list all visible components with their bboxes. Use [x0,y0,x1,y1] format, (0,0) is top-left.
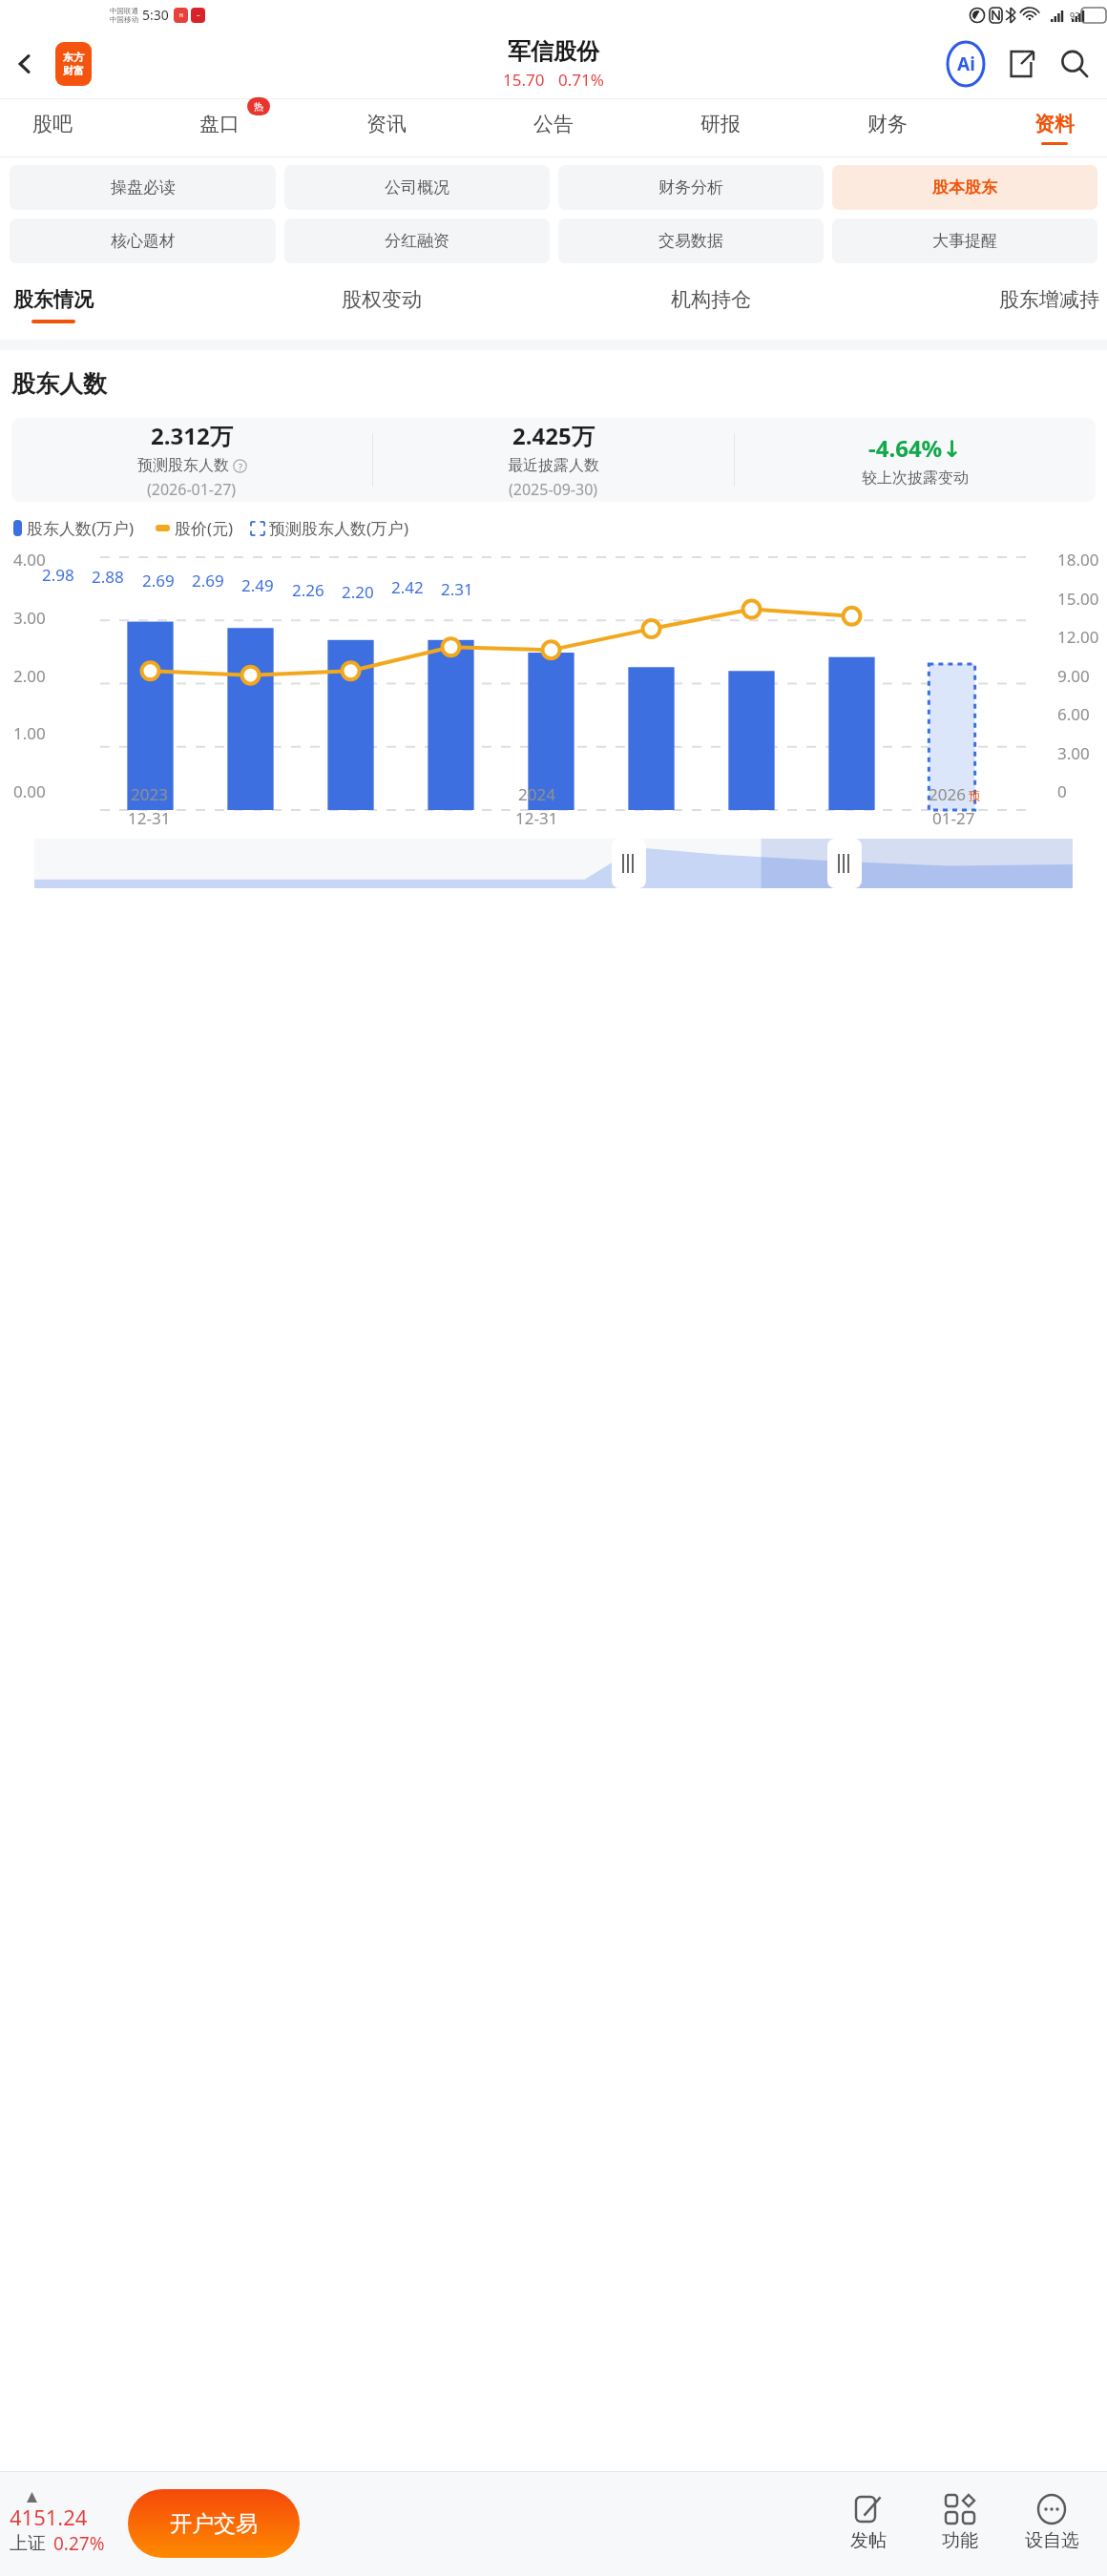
staticText: 股东人数 [11,369,107,399]
staticText: ? [239,461,242,472]
button[interactable]: 开户交易 [128,2489,300,2558]
button[interactable]: 财务分析 [558,165,824,210]
button[interactable]: 交易数据 [558,218,824,263]
staticText: 中国联通 [110,7,138,15]
staticText: 2.26 [292,579,324,601]
staticText: 01-27 [932,807,975,829]
staticText: 机构持仓 [671,287,751,312]
staticText: 盘口 [199,112,240,136]
staticText: 东方 [63,51,84,64]
staticText: 分红融资 [385,231,449,251]
button[interactable]: 资讯 [344,99,429,156]
button[interactable]: 财务 [845,99,930,156]
staticText: 发帖 [850,2529,887,2552]
staticText: 资料 [1034,112,1075,136]
staticText: 2.42 [391,576,424,598]
staticText: 2023 [131,783,168,805]
button[interactable]: 功能 [914,2471,1006,2576]
button[interactable]: 研报 [678,99,763,156]
button[interactable]: 股东增减持 [999,271,1099,340]
button[interactable]: 公司概况 [284,165,550,210]
staticText: 开户交易 [170,2510,258,2538]
button[interactable]: 搜索 [1050,39,1099,89]
staticText: 股东增减持 [999,287,1099,312]
staticText: 5:30 [142,6,169,24]
staticText: 0 [1057,780,1067,802]
button[interactable]: 盘口 [177,99,262,156]
staticText: 公告 [533,112,574,136]
staticText: 较上次披露变动 [862,468,969,488]
staticText: 4.00 [13,549,46,571]
staticText: 0.27% [53,2531,105,2556]
staticText: 军信股份 [508,37,599,66]
button[interactable]: 股权变动 [342,271,422,340]
staticText: 2.425万 [512,420,595,451]
button[interactable]: 东方 [55,42,92,86]
staticText: 财务 [867,112,908,136]
staticText: 股价(元) [175,517,234,539]
staticText: 2.88 [92,566,124,588]
staticText: (2025-09-30) [509,479,598,500]
staticText: 上证 [10,2532,46,2555]
staticText: 2.69 [192,570,224,592]
button[interactable]: 股东情况 [13,271,94,340]
staticText: 0.00 [13,780,46,802]
staticText: 功能 [942,2529,978,2552]
staticText: 12-31 [515,807,558,829]
staticText: 财务分析 [658,177,723,197]
staticText: 6.00 [1057,703,1090,725]
staticText: -4.64%↓ [868,432,962,464]
button[interactable]: 调整范围 [612,839,646,888]
staticText: 12-31 [128,807,171,829]
button[interactable]: 分红融资 [284,218,550,263]
button[interactable]: 设自选 [1006,2471,1097,2576]
staticText: 研报 [700,112,741,136]
staticText: 操盘必读 [111,177,176,197]
button[interactable]: 调整范围 [827,839,862,888]
button[interactable]: 股吧 [10,99,95,156]
staticText: H [179,12,183,19]
staticText: 股本股东 [932,177,997,197]
button[interactable]: 核心题材 [10,218,276,263]
staticText: 公司概况 [385,177,449,197]
staticText: 9.00 [1057,665,1090,687]
staticText: 核心题材 [111,231,176,251]
staticText: 12.00 [1057,626,1099,648]
staticText: 大事提醒 [932,231,997,251]
staticText: 股权变动 [342,287,422,312]
button[interactable]: 分享 [996,39,1046,89]
staticText: 2.31 [441,578,473,600]
staticText: 预测股东人数 [137,456,229,475]
staticText: 1.00 [13,722,46,744]
button[interactable]: 股本股东 [832,165,1097,210]
button[interactable]: 发帖 [823,2471,914,2576]
staticText: 4151.24 [10,2503,88,2531]
staticText: 热 [254,100,263,113]
staticText: 18.00 [1057,549,1099,571]
staticText: 2.69 [142,570,175,592]
staticText: 15.00 [1057,588,1099,610]
staticText: 最近披露人数 [508,456,599,475]
staticText: (2026-01-27) [147,479,237,500]
staticText: 2.20 [342,581,374,603]
button[interactable]: 操盘必读 [10,165,276,210]
button[interactable]: 返回 [4,43,46,85]
staticText: 2.49 [241,574,274,596]
button[interactable]: 机构持仓 [671,271,751,340]
staticText: 2024 [518,783,555,805]
staticText: 2.00 [13,665,46,687]
staticText: ~ [197,11,200,19]
staticText: 资讯 [366,112,407,136]
staticText: 财富 [63,64,84,77]
button[interactable]: 4151.24 [10,2492,105,2556]
staticText: 中国移动 [110,15,138,24]
button[interactable]: AI [941,39,991,89]
staticText: 设自选 [1025,2529,1079,2552]
button[interactable]: 资料 [1012,99,1097,156]
staticText: 3.00 [1057,742,1090,764]
staticText: 92 [1070,10,1080,21]
button[interactable]: 大事提醒 [832,218,1097,263]
staticText: 2026 [929,783,966,805]
staticText: 2.98 [42,564,74,586]
button[interactable]: 公告 [511,99,596,156]
